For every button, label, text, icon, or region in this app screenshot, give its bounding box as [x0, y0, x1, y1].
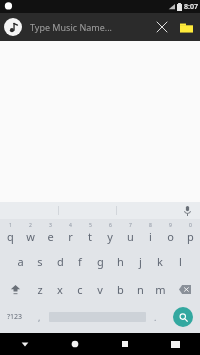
staticText: t	[88, 229, 92, 244]
button[interactable]: Clear	[150, 15, 174, 39]
staticText: a	[17, 254, 24, 269]
button[interactable]: Backspace	[170, 275, 200, 303]
button[interactable]: 1	[0, 219, 20, 247]
button[interactable]: App icon	[4, 18, 22, 36]
staticText: g	[97, 254, 104, 269]
staticText: ?123	[7, 312, 23, 322]
button[interactable]: 0	[180, 219, 200, 247]
button[interactable]: 9	[160, 219, 180, 247]
staticText: 8:07	[184, 2, 198, 12]
button[interactable]: n	[130, 275, 150, 303]
staticText: Type Music Name...	[30, 21, 112, 33]
staticText: p	[187, 229, 194, 244]
button[interactable]: z	[30, 275, 50, 303]
staticText: j	[139, 254, 142, 269]
staticText: 1	[9, 222, 12, 229]
button[interactable]: Search	[165, 303, 200, 331]
staticText: 5	[89, 222, 92, 229]
staticText: k	[157, 254, 163, 269]
button[interactable]: h	[110, 247, 130, 275]
button[interactable]: Open folder	[174, 15, 198, 39]
staticText: m	[155, 282, 166, 297]
button[interactable]: 6	[100, 219, 120, 247]
button[interactable]: k	[150, 247, 170, 275]
button[interactable]: Type Music Name...	[30, 21, 150, 33]
staticText: u	[127, 229, 134, 244]
staticText: n	[137, 282, 144, 297]
button[interactable]: m	[150, 275, 170, 303]
staticText: 6	[109, 222, 112, 229]
button[interactable]: 4	[60, 219, 80, 247]
button[interactable]: Shift	[0, 275, 30, 303]
button[interactable]: 3	[40, 219, 60, 247]
button[interactable]: Back	[0, 333, 50, 355]
button[interactable]: 2	[20, 219, 40, 247]
button[interactable]: v	[90, 275, 110, 303]
staticText: i	[149, 229, 152, 244]
staticText: y	[107, 229, 113, 244]
staticText: s	[37, 254, 43, 269]
staticText: v	[97, 282, 103, 297]
button[interactable]: 8	[140, 219, 160, 247]
button[interactable]: c	[70, 275, 90, 303]
staticText: w	[26, 229, 35, 244]
button[interactable]: Home	[50, 333, 100, 355]
staticText: e	[47, 229, 54, 244]
button[interactable]: d	[50, 247, 70, 275]
staticText: q	[7, 229, 14, 244]
button[interactable]: g	[90, 247, 110, 275]
staticText: h	[117, 254, 124, 269]
staticText: 3	[49, 222, 52, 229]
staticText: l	[179, 254, 182, 269]
staticText: 9	[169, 222, 172, 229]
staticText: 0	[189, 222, 192, 229]
button[interactable]: ,	[30, 303, 49, 331]
button[interactable]: Hide keyboard	[150, 333, 200, 355]
staticText: 2	[29, 222, 32, 229]
button[interactable]: Voice input	[174, 202, 200, 219]
staticText: c	[77, 282, 83, 297]
staticText: d	[57, 254, 64, 269]
staticText: r	[68, 229, 73, 244]
staticText: ,	[38, 311, 41, 323]
button[interactable]: Recent apps	[100, 333, 150, 355]
staticText: 4	[69, 222, 72, 229]
button[interactable]: s	[30, 247, 50, 275]
button[interactable]: f	[70, 247, 90, 275]
button[interactable]: b	[110, 275, 130, 303]
staticText: x	[57, 282, 63, 297]
staticText: z	[37, 282, 43, 297]
button[interactable]: ?123	[0, 303, 30, 331]
button[interactable]: l	[170, 247, 190, 275]
staticText: 8	[149, 222, 152, 229]
staticText: b	[117, 282, 124, 297]
staticText: 7	[129, 222, 132, 229]
button[interactable]: x	[50, 275, 70, 303]
button[interactable]: 7	[120, 219, 140, 247]
button[interactable]: 5	[80, 219, 100, 247]
button[interactable]: j	[130, 247, 150, 275]
button[interactable]: a	[10, 247, 30, 275]
staticText: f	[78, 254, 82, 269]
staticText: .	[154, 311, 157, 323]
staticText: o	[167, 229, 174, 244]
